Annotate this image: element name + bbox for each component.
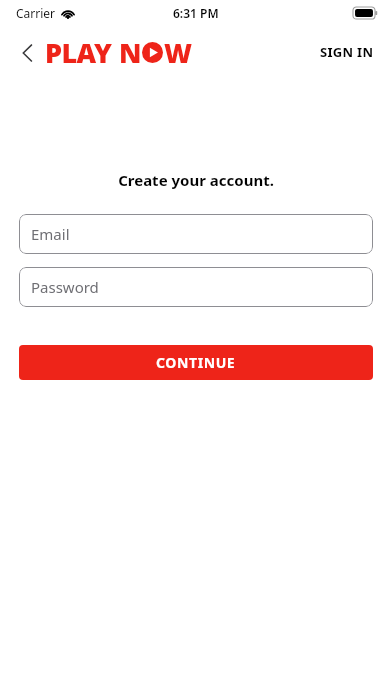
staticText: 6:31 PM [173,5,219,21]
button[interactable]: Play Now [45,34,192,71]
staticText: Carrier [16,5,56,21]
button[interactable]: Password [19,267,373,307]
staticText: SIGN IN [320,43,374,61]
button[interactable]: Email [19,214,373,254]
button[interactable]: CONTINUE [19,345,373,380]
staticText: Email [31,224,70,244]
button[interactable]: SIGN IN [302,33,392,71]
staticText: PLAY [45,34,112,71]
staticText: W [164,34,192,71]
staticText: Create your account. [118,170,274,190]
staticText: CONTINUE [156,353,236,372]
staticText: N [119,34,141,71]
button[interactable]: Back [14,40,40,66]
staticText: Password [31,277,99,297]
